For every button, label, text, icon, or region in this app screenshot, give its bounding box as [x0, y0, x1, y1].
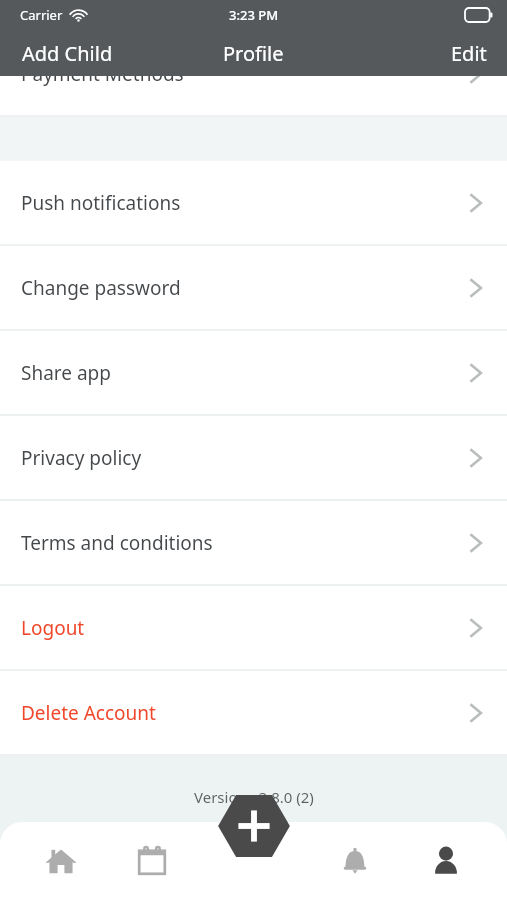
staticText: Privacy policy: [21, 445, 142, 471]
button[interactable]: Profile: [416, 831, 476, 891]
button[interactable]: Change password: [0, 246, 507, 329]
button[interactable]: Logout: [0, 586, 507, 669]
staticText: Version : 3.8.0 (2): [194, 787, 314, 807]
staticText: Logout: [21, 615, 85, 641]
button[interactable]: Privacy policy: [0, 416, 507, 499]
staticText: Share app: [21, 360, 111, 386]
button[interactable]: Share app: [0, 331, 507, 414]
staticText: Change password: [21, 275, 181, 301]
button[interactable]: Home: [31, 831, 91, 891]
button[interactable]: Terms and conditions: [0, 501, 507, 584]
button[interactable]: Add: [215, 787, 293, 865]
button[interactable]: Push notifications: [0, 161, 507, 244]
button[interactable]: Add Child: [0, 34, 125, 73]
button[interactable]: Calendar: [122, 831, 182, 891]
staticText: Add Child: [22, 40, 113, 67]
staticText: Profile: [223, 40, 284, 67]
button[interactable]: Payment Methods: [0, 32, 507, 115]
staticText: Terms and conditions: [21, 530, 213, 556]
staticText: Delete Account: [21, 700, 156, 726]
button[interactable]: Delete Account: [0, 671, 507, 754]
staticText: 3:23 PM: [229, 6, 279, 24]
staticText: Payment Methods: [21, 61, 184, 87]
staticText: Carrier: [20, 6, 63, 24]
button[interactable]: Notifications: [325, 831, 385, 891]
staticText: Edit: [451, 40, 487, 67]
staticText: Push notifications: [21, 190, 181, 216]
button[interactable]: Edit: [439, 34, 507, 73]
